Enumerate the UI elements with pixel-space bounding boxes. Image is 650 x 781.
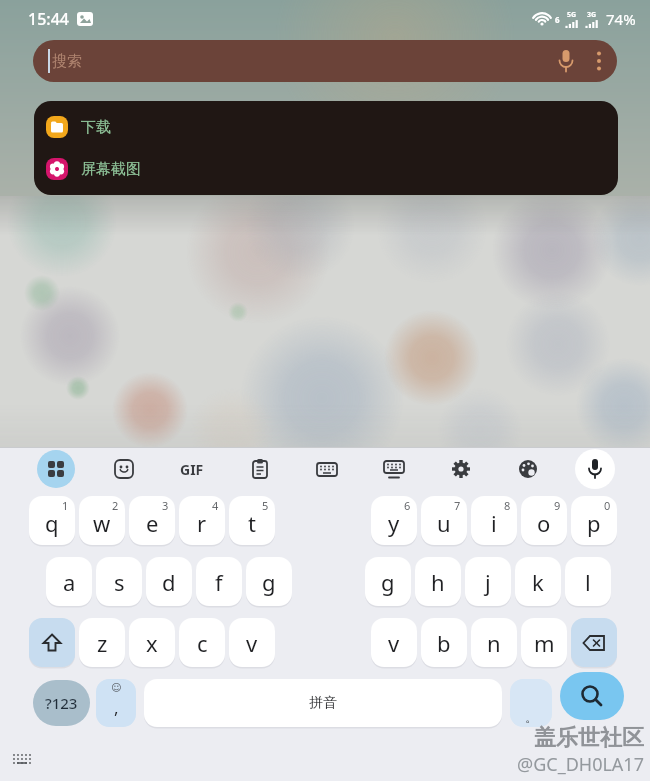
staticText: 6 (555, 14, 560, 25)
button[interactable]: c (179, 618, 225, 667)
button[interactable]: k (515, 557, 561, 606)
staticText: m (534, 628, 555, 658)
button[interactable]: q (29, 496, 75, 545)
button[interactable]: a (46, 557, 92, 606)
button[interactable] (90, 448, 158, 490)
staticText: 。 (525, 709, 538, 725)
staticText: 8 (504, 498, 511, 513)
button[interactable]: u (421, 496, 467, 545)
staticText: 1 (62, 498, 69, 513)
button[interactable]: e (129, 496, 175, 545)
staticText: r (197, 508, 207, 538)
staticText: q (45, 508, 59, 538)
staticText: 盖乐世社区 (534, 724, 644, 752)
staticText: c (197, 628, 208, 658)
button[interactable]: i (471, 496, 517, 545)
staticText: 15:44 (28, 8, 69, 30)
staticText: v (388, 628, 400, 658)
button[interactable] (293, 448, 360, 490)
button[interactable] (560, 672, 624, 720)
staticText: 搜索 (52, 52, 82, 71)
button[interactable]: d (146, 557, 192, 606)
staticText: z (97, 628, 108, 658)
staticText: 拼音 (309, 694, 337, 712)
staticText: 0 (604, 498, 611, 513)
button[interactable] (360, 448, 427, 490)
button[interactable]: ?123 (33, 680, 90, 726)
button[interactable]: x (129, 618, 175, 667)
button[interactable]: l (565, 557, 611, 606)
staticText: y (388, 508, 400, 538)
button[interactable]: r (179, 496, 225, 545)
button[interactable]: f (196, 557, 242, 606)
button[interactable] (226, 448, 293, 490)
button[interactable] (561, 448, 628, 490)
button[interactable]: w (79, 496, 125, 545)
staticText: 5 (262, 498, 269, 513)
staticText: , (114, 696, 119, 719)
staticText: w (93, 508, 111, 538)
button[interactable]: j (465, 557, 511, 606)
staticText: 下载 (81, 118, 111, 137)
staticText: v (246, 628, 258, 658)
button[interactable] (427, 448, 494, 490)
button[interactable]: m (521, 618, 567, 667)
staticText: 6 (404, 498, 411, 513)
staticText: s (114, 567, 125, 597)
button[interactable]: s (96, 557, 142, 606)
button[interactable]: 屏幕截图 (46, 152, 618, 186)
button[interactable]: p (571, 496, 617, 545)
staticText: 3G (587, 10, 597, 20)
staticText: 5G (567, 10, 577, 20)
staticText: x (146, 628, 158, 658)
staticText: 屏幕截图 (81, 160, 141, 179)
button[interactable]: h (415, 557, 461, 606)
staticText: i (491, 508, 497, 538)
staticText: d (162, 567, 176, 597)
staticText: 2 (112, 498, 119, 513)
button[interactable]: o (521, 496, 567, 545)
button[interactable] (29, 618, 75, 667)
staticText: 4 (212, 498, 219, 513)
staticText: f (215, 567, 223, 597)
button[interactable]: t (229, 496, 275, 545)
button[interactable]: g (246, 557, 292, 606)
staticText: g (262, 567, 276, 597)
button[interactable]: v (229, 618, 275, 667)
staticText: n (487, 628, 501, 658)
button[interactable]: 。 (510, 679, 552, 727)
staticText: 3 (162, 498, 169, 513)
button[interactable]: g (365, 557, 411, 606)
staticText: l (585, 567, 591, 597)
staticText: g (381, 567, 395, 597)
button[interactable] (22, 448, 90, 490)
button[interactable]: 下载 (46, 110, 618, 144)
button[interactable]: GIF (158, 448, 226, 490)
button[interactable]: z (79, 618, 125, 667)
staticText: 7 (454, 498, 461, 513)
staticText: 9 (554, 498, 561, 513)
staticText: @GC_DH0LA17 (517, 752, 644, 777)
staticText: j (485, 567, 491, 597)
button[interactable]: ☺ (96, 679, 136, 727)
staticText: a (63, 567, 76, 597)
button[interactable] (571, 618, 617, 667)
staticText: ?123 (45, 693, 78, 713)
button[interactable]: n (471, 618, 517, 667)
button[interactable]: 拼音 (144, 679, 502, 727)
staticText: e (146, 508, 159, 538)
staticText: b (437, 628, 451, 658)
staticText: 74% (606, 9, 636, 29)
button[interactable]: v (371, 618, 417, 667)
button[interactable]: 搜索 (33, 40, 617, 82)
staticText: k (532, 567, 544, 597)
staticText: t (248, 508, 256, 538)
button[interactable]: b (421, 618, 467, 667)
staticText: ☺ (111, 682, 122, 694)
staticText: p (587, 508, 601, 538)
button[interactable]: y (371, 496, 417, 545)
staticText: u (437, 508, 451, 538)
button[interactable] (494, 448, 561, 490)
staticText: o (537, 508, 551, 538)
staticText: h (431, 567, 445, 597)
